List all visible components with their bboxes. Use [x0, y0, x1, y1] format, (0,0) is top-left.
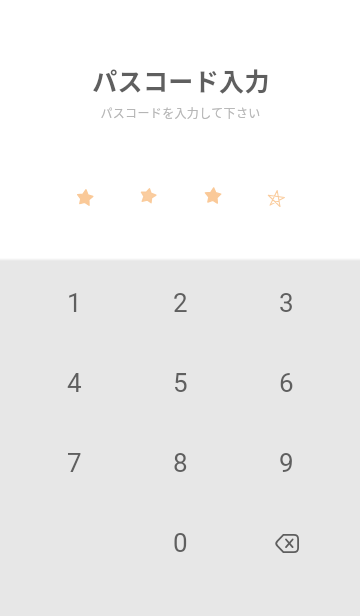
button[interactable]: 1	[21, 263, 127, 343]
button[interactable]: 0	[127, 503, 233, 583]
button[interactable]: Delete	[233, 503, 339, 583]
button[interactable]: 7	[21, 423, 127, 503]
staticText: 4	[67, 368, 82, 398]
staticText: 7	[67, 448, 82, 478]
staticText: 6	[279, 368, 294, 398]
button[interactable]: 4	[21, 343, 127, 423]
staticText: パスコードを入力して下さい	[100, 104, 261, 121]
staticText: 0	[173, 528, 188, 558]
staticText: 1	[67, 288, 82, 318]
staticText: 5	[173, 368, 188, 398]
button[interactable]: 3	[233, 263, 339, 343]
button[interactable]: 5	[127, 343, 233, 423]
button[interactable]: 9	[233, 423, 339, 503]
button[interactable]: 8	[127, 423, 233, 503]
button[interactable]: 2	[127, 263, 233, 343]
other: Backspace	[274, 534, 299, 553]
staticText: 8	[173, 448, 188, 478]
staticText: パスコード入力	[92, 62, 270, 98]
staticText: 3	[279, 288, 294, 318]
staticText: 9	[279, 448, 294, 478]
staticText: 2	[173, 288, 188, 318]
button[interactable]: 6	[233, 343, 339, 423]
